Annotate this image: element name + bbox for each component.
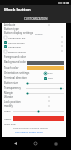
- staticText: Attribute: [4, 23, 16, 27]
- staticText: Lock position: [4, 100, 21, 104]
- staticText: Width: [4, 110, 11, 113]
- staticText: fixed: [48, 77, 53, 80]
- button[interactable]: Terminal direction: [4, 76, 27, 80]
- staticText: Touch color: [4, 66, 19, 70]
- button[interactable]: Width: [4, 109, 11, 113]
- button[interactable]: Attribute: [4, 23, 16, 27]
- button[interactable]: Home: [31, 139, 40, 148]
- staticText: Notification: [8, 45, 22, 48]
- button[interactable]: Button size: [4, 81, 19, 85]
- staticText: Mock button: [4, 7, 31, 13]
- staticText: Vibrate: [4, 95, 14, 99]
- staticText: Verify time: [4, 123, 16, 126]
- button[interactable]: Normal button: [4, 40, 66, 44]
- button[interactable]: Margin: [4, 91, 14, 95]
- button[interactable]: Touch color: [4, 66, 19, 70]
- staticText: Notification bar: [8, 36, 26, 39]
- button[interactable]: Back: [11, 139, 20, 148]
- button[interactable]: Click here for privacy policy: [15, 131, 43, 134]
- staticText: CUSTOMIZATION: [24, 17, 48, 21]
- staticText: Orientation settings: [4, 71, 30, 75]
- staticText: Click here for privacy policy: [15, 131, 43, 134]
- button[interactable]: Transparency: [4, 86, 21, 90]
- button[interactable]: Button display settings: [4, 31, 33, 35]
- button[interactable]: Button type: [4, 27, 19, 31]
- staticText: Button display settings: [4, 31, 33, 35]
- button[interactable]: modify: [4, 104, 13, 108]
- button[interactable]: Background color: [4, 60, 27, 64]
- staticText: Reverse volume: [8, 50, 26, 53]
- staticText: Foreground color: [4, 55, 26, 59]
- button[interactable]: CUSTOMIZATION: [22, 16, 50, 22]
- button[interactable]: Lock position: [4, 100, 21, 104]
- staticText: Button size: [4, 81, 19, 85]
- staticText: Button type: [4, 27, 19, 31]
- button[interactable]: Height: [4, 117, 12, 121]
- button[interactable]: Notification: [4, 44, 66, 48]
- button[interactable]: Vibrate: [4, 95, 14, 99]
- staticText: auto: [48, 72, 53, 75]
- button[interactable]: Verify time: [4, 122, 16, 126]
- staticText: Margin: [4, 91, 14, 95]
- staticText: Transparency: [4, 86, 21, 90]
- staticText: Background color: [4, 60, 27, 64]
- button[interactable]: Foreground color: [4, 55, 26, 59]
- staticText: modify: [4, 104, 13, 108]
- button[interactable]: Orientation settings: [4, 71, 30, 75]
- button[interactable]: Notification bar: [4, 35, 66, 39]
- staticText: Show ads when changing settings: [13, 127, 48, 130]
- staticText: Normal button: [8, 41, 25, 44]
- staticText: Classic: [35, 32, 43, 35]
- staticText: Terminal direction: [4, 76, 27, 80]
- button[interactable]: Reverse volume: [4, 49, 66, 53]
- staticText: Height: [4, 118, 12, 121]
- button[interactable]: Recents: [51, 139, 60, 148]
